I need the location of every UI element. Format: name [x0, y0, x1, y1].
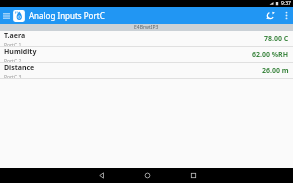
button[interactable]: Refresh [261, 7, 279, 24]
staticText: 9:37 [281, 0, 291, 7]
staticText: Distance [4, 63, 35, 73]
button[interactable]: T.aera [0, 31, 293, 46]
button[interactable]: Open navigation drawer [0, 7, 12, 24]
staticText: E4BrwtIP3 [134, 24, 159, 31]
staticText: T.aera [4, 31, 26, 41]
button[interactable]: More options [279, 7, 293, 24]
staticText: 62.00 %RH [252, 50, 289, 60]
staticText: 26.00 m [262, 66, 289, 76]
staticText: 78.00 C [264, 34, 289, 44]
button[interactable]: Home [124, 168, 170, 183]
staticText: Humidity [4, 47, 37, 57]
staticText: Analog Inputs PortC [29, 10, 105, 21]
button[interactable]: Recent apps [170, 168, 216, 183]
button[interactable]: Back [78, 168, 124, 183]
button[interactable]: Humidity [0, 47, 293, 62]
staticText: PortC.1 [4, 42, 22, 46]
button[interactable]: Distance [0, 63, 293, 78]
staticText: PortC.3 [4, 74, 22, 78]
staticText: PortC.2 [4, 58, 22, 62]
